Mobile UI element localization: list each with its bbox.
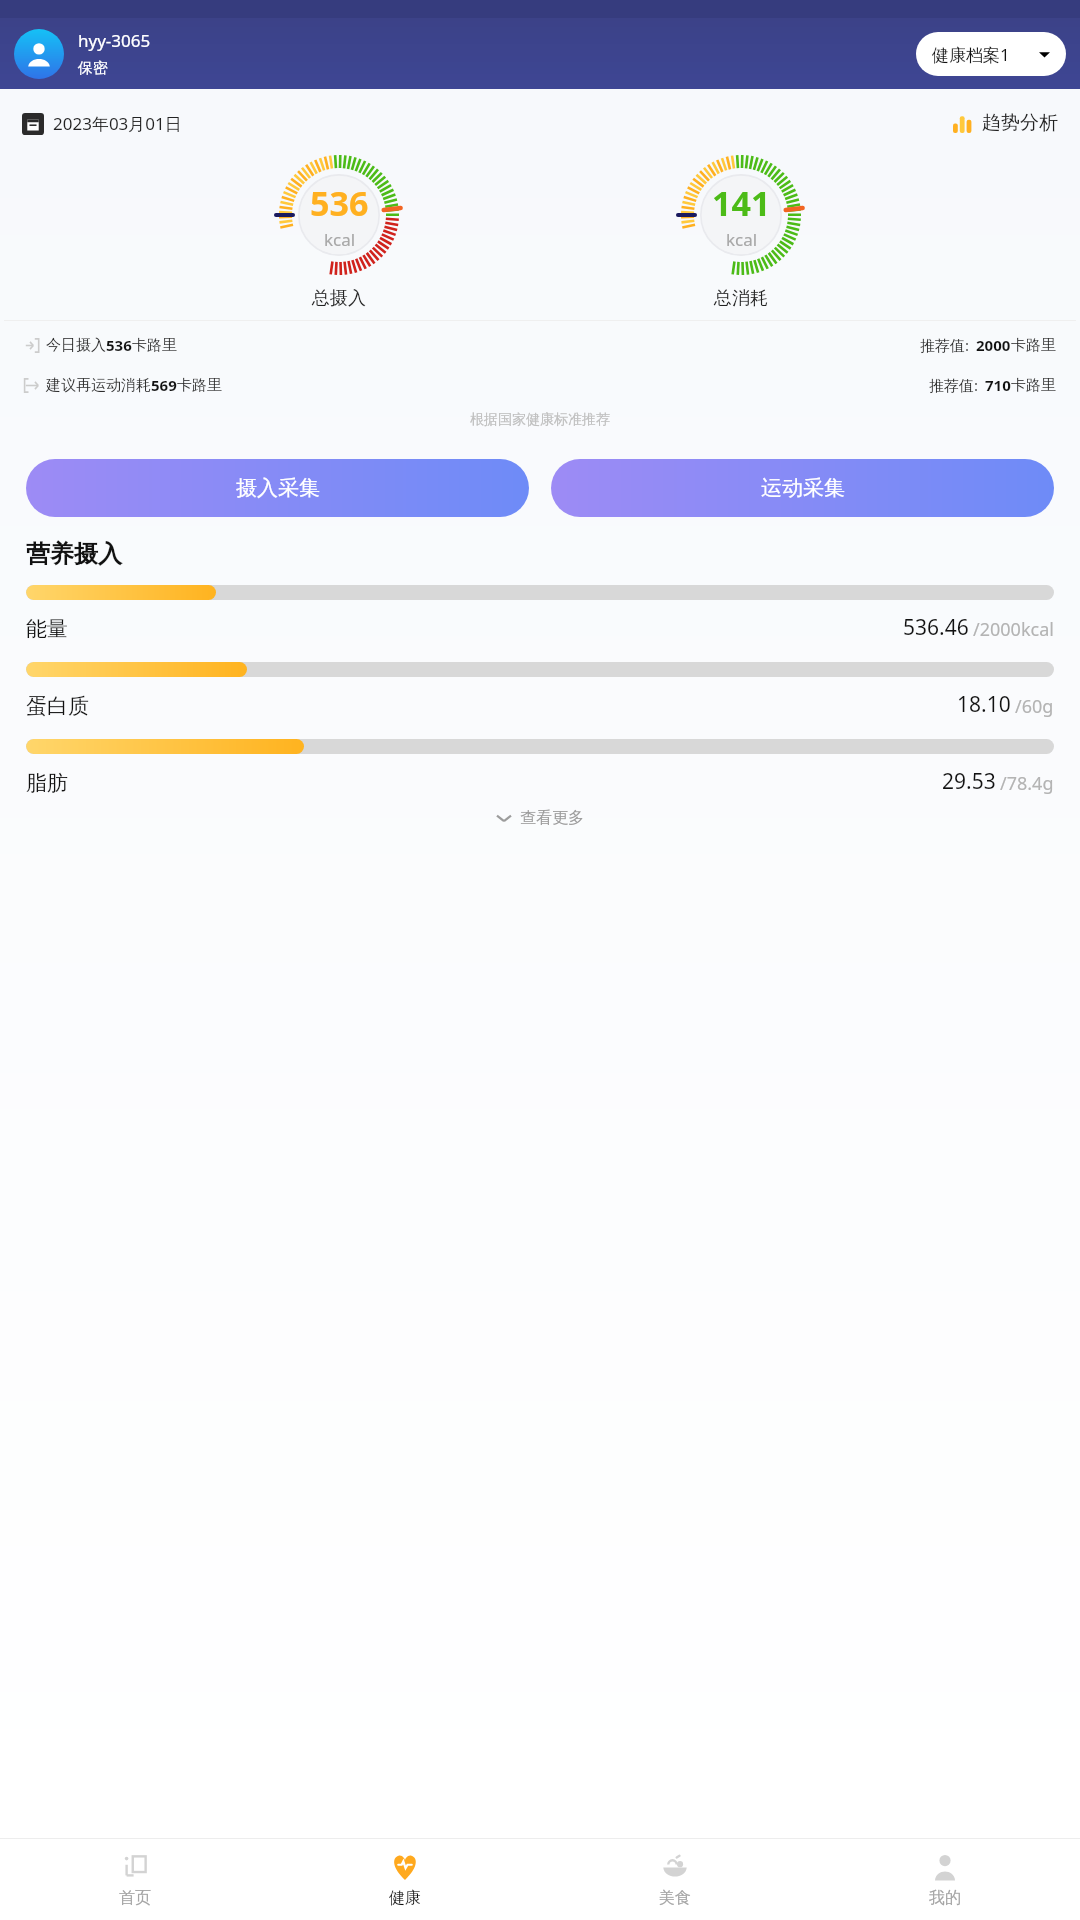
staticText: 美食 [659,1888,691,1908]
staticText: 141 [712,180,771,226]
staticText: 推荐值: [929,375,979,395]
staticText: 趋势分析 [982,111,1058,135]
button[interactable]: 我的 [810,1839,1080,1920]
button[interactable]: Avatar [14,29,64,79]
staticText: 总摄入 [312,287,366,310]
button[interactable]: 健康 [270,1839,540,1920]
button[interactable]: 首页 [0,1839,270,1920]
other: 我的 [931,1853,959,1881]
staticText: 营养摄入 [26,539,122,569]
other: 健康 [391,1853,419,1881]
staticText: 运动采集 [761,475,845,501]
staticText: 我的 [929,1888,961,1908]
staticText: 健康 [389,1888,421,1908]
button[interactable]: 趋势分析 [953,111,1058,135]
staticText: 569 [151,375,177,395]
other: 美食 [661,1853,689,1881]
staticText: 卡路里 [132,336,177,355]
staticText: 首页 [119,1888,151,1908]
staticText: 保密 [78,59,108,78]
staticText: 能量 [26,616,68,642]
button[interactable]: 2023年03月01日 [22,112,182,135]
staticText: 今日摄入 [46,336,106,355]
button[interactable]: 摄入采集 [26,459,529,517]
staticText: kcal [726,228,758,251]
staticText: 710 [985,375,1011,395]
staticText: hyy-3065 [78,29,151,52]
staticText: 健康档案1 [932,43,1010,66]
staticText: 总消耗 [714,287,768,310]
button[interactable]: 查看更多 [26,808,1054,828]
staticText: /78.4g [1000,771,1054,796]
staticText: 536 [106,335,132,355]
staticText: 18.10 [957,690,1011,719]
staticText: 蛋白质 [26,693,89,719]
staticText: 脂肪 [26,770,68,796]
staticText: 2000 [976,335,1011,355]
staticText: /2000kcal [973,617,1054,642]
staticText: 卡路里 [1011,336,1056,355]
staticText: 推荐值: [920,335,970,355]
staticText: 卡路里 [1011,376,1056,395]
staticText: 536.46 [903,613,969,642]
staticText: 查看更多 [520,808,584,828]
staticText: 卡路里 [177,376,222,395]
button[interactable]: 健康档案1 [916,32,1066,76]
staticText: 摄入采集 [236,475,320,501]
staticText: 29.53 [942,767,996,796]
button[interactable]: 运动采集 [551,459,1054,517]
staticText: 建议再运动消耗 [46,376,151,395]
other: 首页 [121,1853,149,1881]
staticText: 536 [310,180,369,226]
staticText: /60g [1015,694,1054,719]
staticText: kcal [324,228,356,251]
staticText: 根据国家健康标准推荐 [24,411,1056,429]
staticText: 2023年03月01日 [53,112,182,135]
button[interactable]: 美食 [540,1839,810,1920]
